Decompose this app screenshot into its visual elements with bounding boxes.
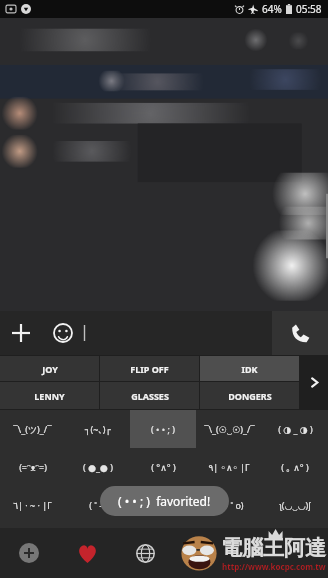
button[interactable]: ¯\_(ツ)_/¯ bbox=[0, 410, 65, 448]
staticText: ( ◑ _ ◑ ) bbox=[278, 423, 313, 435]
button[interactable]: ,( ~ ˚ o) bbox=[196, 486, 262, 524]
staticText: ( ｡ ∧° ) bbox=[281, 461, 309, 473]
staticText: ( °∧° ) bbox=[151, 461, 176, 473]
button[interactable]: JOY bbox=[0, 356, 99, 381]
button[interactable]: Add attachment bbox=[0, 312, 42, 354]
staticText: ┐(~､)┌ bbox=[85, 423, 111, 435]
button[interactable]: ʅ(◡‿◡)ʃ bbox=[262, 486, 328, 524]
button[interactable]: IDK bbox=[200, 356, 299, 381]
staticText: GLASSES bbox=[131, 390, 169, 402]
button[interactable]: Language bbox=[130, 538, 160, 568]
button[interactable]: ┐(~､)┌ bbox=[65, 410, 130, 448]
staticText: ( • • ; ) favorited! bbox=[118, 493, 211, 509]
button[interactable]: Emoji bbox=[42, 312, 84, 354]
button[interactable]: ( ●_● ) bbox=[65, 448, 130, 486]
staticText: ( • • ; ) bbox=[151, 423, 175, 435]
staticText: 64% bbox=[262, 2, 282, 16]
staticText: ¯\_(☉‿☉)_/¯ bbox=[204, 423, 255, 435]
button[interactable]: DONGERS bbox=[200, 382, 299, 409]
button[interactable]: Add emoticon bbox=[14, 538, 44, 568]
button[interactable]: LENNY bbox=[0, 382, 99, 409]
staticText: ,( ~ ˚ o) bbox=[215, 499, 244, 511]
button[interactable]: ( ｡ ∧° ) bbox=[262, 448, 328, 486]
button[interactable]: Favorites bbox=[72, 538, 102, 568]
staticText: LENNY bbox=[34, 390, 65, 402]
button[interactable] bbox=[84, 311, 272, 355]
staticText: ( ˚ - , bbox=[89, 499, 107, 511]
staticText: ¯\_(ツ)_/¯ bbox=[13, 423, 52, 435]
button[interactable]: ( ˚ - , bbox=[65, 486, 130, 524]
staticText: DONGERS bbox=[228, 390, 272, 402]
staticText: 05:58 bbox=[296, 2, 322, 16]
staticText: JOY bbox=[42, 363, 58, 375]
button[interactable]: More categories bbox=[300, 355, 328, 410]
staticText: ٦| · ~ · |Γ bbox=[13, 499, 52, 511]
staticText: IDK bbox=[241, 363, 258, 375]
staticText: 電腦王阿達 bbox=[221, 535, 326, 561]
staticText: ʅ(◡‿◡)ʃ bbox=[279, 499, 311, 511]
button[interactable]: ( ◑ _ ◑ ) bbox=[262, 410, 328, 448]
staticText: FLIP OFF bbox=[130, 363, 169, 375]
button[interactable]: ٦| · ~ · |Γ bbox=[0, 486, 65, 524]
staticText: ⊔⌐ ─ ⌐⊔ bbox=[143, 499, 183, 511]
button[interactable]: Call bbox=[272, 311, 328, 355]
button[interactable]: FLIP OFF bbox=[100, 356, 199, 381]
button[interactable]: ( • • ; ) bbox=[130, 410, 196, 448]
staticText: (=ᵔᴥᵔ=) bbox=[19, 461, 47, 473]
staticText: http://www.kocpc.com.tw bbox=[222, 561, 326, 572]
button[interactable]: (=ᵔᴥᵔ=) bbox=[0, 448, 65, 486]
button[interactable]: ⊔⌐ ─ ⌐⊔ bbox=[130, 486, 196, 524]
button[interactable]: GLASSES bbox=[100, 382, 199, 409]
button[interactable]: ¯\_(☉‿☉)_/¯ bbox=[196, 410, 262, 448]
staticText: ( ●_● ) bbox=[83, 461, 113, 473]
button[interactable]: ٩| ◦∧◦ |Γ bbox=[196, 448, 262, 486]
staticText: ٩| ◦∧◦ |Γ bbox=[208, 461, 250, 473]
button[interactable]: ( °∧° ) bbox=[130, 448, 196, 486]
